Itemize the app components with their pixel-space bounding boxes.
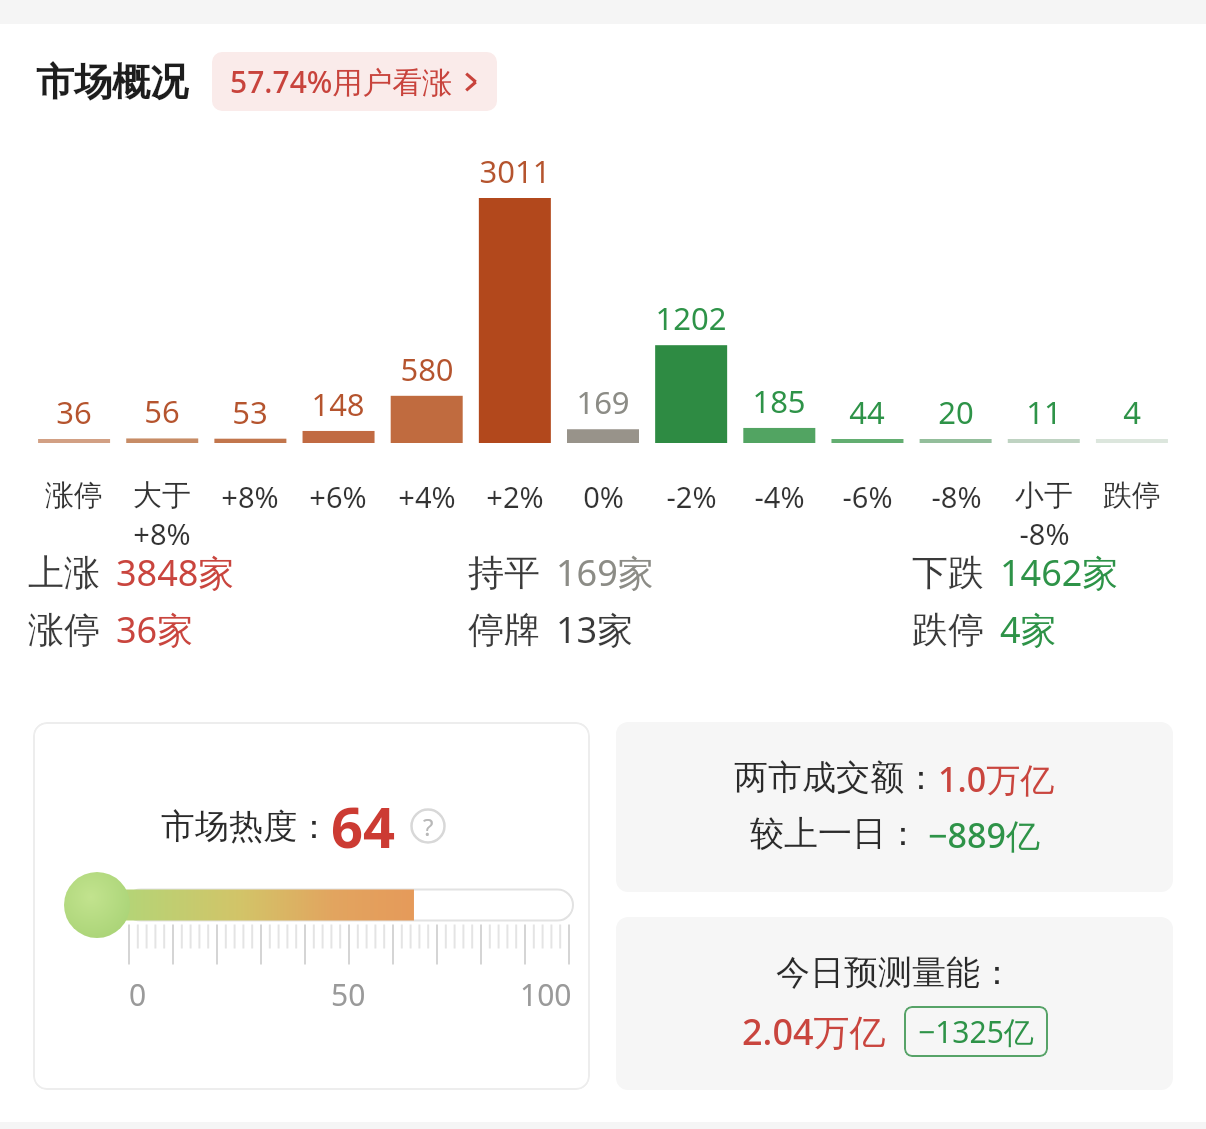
staticText: 市场概况	[36, 58, 188, 106]
staticText: -8%	[1019, 514, 1070, 553]
button[interactable]: +4%	[383, 477, 471, 516]
button[interactable]: -8%	[912, 477, 1000, 516]
staticText: 涨停	[45, 477, 103, 514]
button[interactable]: 今日预测量能：	[616, 917, 1173, 1090]
staticText: +8%	[221, 477, 279, 516]
button[interactable]: 小于	[1000, 477, 1088, 553]
staticText: 较上一日：	[750, 812, 920, 855]
staticText: +4%	[398, 477, 456, 516]
staticText: ?	[423, 810, 434, 843]
button[interactable]: 涨停	[30, 477, 118, 514]
staticText: 57.74%用户看涨	[230, 61, 453, 102]
button[interactable]: 涨停	[28, 605, 288, 654]
staticText: +2%	[486, 477, 544, 516]
staticText: 56	[118, 390, 206, 432]
button[interactable]: 0%	[559, 477, 647, 516]
button[interactable]: 关于市场热度	[410, 808, 446, 844]
staticText: 两市成交额：	[734, 756, 938, 799]
staticText: -2%	[666, 477, 717, 516]
staticText: 大于	[133, 477, 191, 514]
staticText: 11	[1000, 391, 1088, 433]
staticText: 涨停	[28, 607, 100, 652]
staticText: 580	[383, 348, 471, 390]
button[interactable]: 停牌	[468, 605, 728, 654]
staticText: 小于	[1015, 477, 1073, 514]
staticText: 13家	[556, 605, 634, 654]
staticText: 169家	[556, 548, 654, 597]
staticText: 64	[331, 788, 396, 864]
staticText: -8%	[931, 477, 982, 516]
button[interactable]: 市场热度：	[33, 722, 590, 1090]
staticText: +6%	[309, 477, 367, 516]
staticText: 50	[331, 974, 366, 1015]
staticText: 36	[30, 391, 118, 433]
button[interactable]: 上涨	[28, 548, 288, 597]
staticText: −889亿	[928, 812, 1040, 858]
staticText: 4	[1088, 391, 1176, 433]
staticText: 停牌	[468, 607, 540, 652]
staticText: 跌停	[1103, 477, 1161, 514]
staticText: 0	[129, 974, 147, 1015]
button[interactable]: -2%	[647, 477, 735, 516]
button[interactable]: 两市成交额：	[616, 722, 1173, 892]
staticText: 上涨	[28, 550, 100, 595]
staticText: 1202	[647, 297, 735, 339]
staticText: 3011	[471, 150, 559, 192]
staticText: 44	[823, 391, 911, 433]
staticText: 1462家	[1000, 548, 1119, 597]
staticText: 下跌	[912, 550, 984, 595]
staticText: -6%	[842, 477, 893, 516]
staticText: 185	[735, 380, 823, 422]
button[interactable]: -4%	[735, 477, 823, 516]
button[interactable]: +6%	[294, 477, 382, 516]
staticText: 20	[912, 391, 1000, 433]
staticText: 4家	[1000, 605, 1057, 654]
button[interactable]: 跌停	[912, 605, 1172, 654]
button[interactable]: +2%	[471, 477, 559, 516]
staticText: 53	[206, 391, 294, 433]
staticText: 跌停	[912, 607, 984, 652]
button[interactable]: -6%	[823, 477, 911, 516]
staticText: 148	[294, 383, 382, 425]
staticText: 100	[520, 974, 572, 1015]
staticText: 持平	[468, 550, 540, 595]
staticText: 169	[559, 381, 647, 423]
staticText: +8%	[133, 514, 191, 553]
staticText: 3848家	[116, 548, 235, 597]
button[interactable]: +8%	[206, 477, 294, 516]
staticText: 市场热度：	[161, 805, 331, 848]
staticText: 36家	[116, 605, 194, 654]
staticText: 2.04万亿	[742, 1007, 886, 1056]
button[interactable]: 57.74%用户看涨	[212, 52, 497, 111]
button[interactable]: 持平	[468, 548, 728, 597]
button[interactable]: 大于	[118, 477, 206, 553]
staticText: −1325亿	[918, 1011, 1034, 1052]
button[interactable]: 跌停	[1088, 477, 1176, 514]
staticText: 1.0万亿	[938, 756, 1055, 802]
button[interactable]: 下跌	[912, 548, 1172, 597]
staticText: 0%	[583, 477, 624, 516]
staticText: -4%	[754, 477, 805, 516]
staticText: 今日预测量能：	[776, 951, 1014, 994]
